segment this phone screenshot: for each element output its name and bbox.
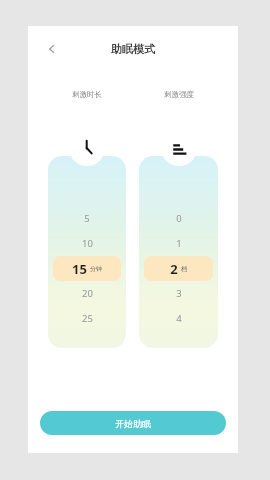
button[interactable]: 0: [144, 206, 213, 231]
button[interactable]: 2: [144, 256, 213, 281]
staticText: 3: [176, 287, 182, 300]
button[interactable]: 15: [53, 256, 121, 281]
button[interactable]: Back: [36, 33, 68, 65]
button[interactable]: 10: [53, 231, 121, 256]
staticText: 助眠模式: [111, 42, 155, 56]
staticText: 4: [176, 312, 182, 325]
staticText: 0: [176, 212, 182, 225]
button[interactable]: 开始助眠: [40, 411, 226, 435]
staticText: 5: [84, 212, 90, 225]
staticText: 25: [82, 312, 93, 325]
button[interactable]: 1: [144, 231, 213, 256]
button[interactable]: 25: [53, 306, 121, 331]
staticText: 2: [170, 260, 178, 278]
staticText: 档: [181, 265, 187, 273]
staticText: 1: [176, 237, 182, 250]
button[interactable]: 5: [53, 206, 121, 231]
staticText: 开始助眠: [115, 418, 151, 429]
staticText: 刺激强度: [164, 90, 194, 99]
button[interactable]: 20: [53, 281, 121, 306]
staticText: 分钟: [90, 265, 102, 273]
button[interactable]: 3: [144, 281, 213, 306]
staticText: 10: [82, 237, 93, 250]
staticText: 20: [82, 287, 93, 300]
button[interactable]: 4: [144, 306, 213, 331]
staticText: 15: [72, 260, 87, 278]
staticText: 刺激时长: [72, 90, 102, 99]
